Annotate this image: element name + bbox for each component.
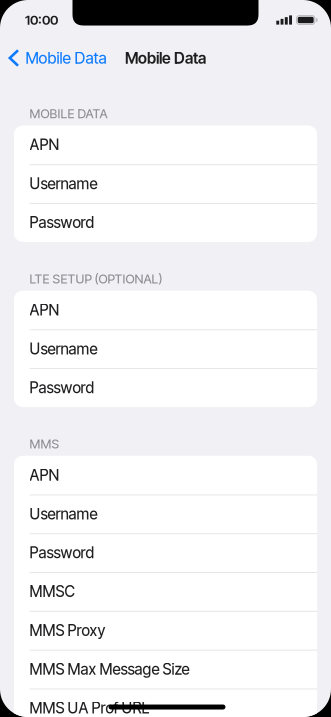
staticText: Password <box>29 213 94 232</box>
staticText: MMS Proxy <box>29 621 105 640</box>
button[interactable]: Username <box>14 164 317 203</box>
staticText: Mobile Data <box>125 49 206 67</box>
button[interactable]: Back to Mobile Data <box>0 43 114 72</box>
staticText: APN <box>29 136 59 154</box>
staticText: APN <box>29 301 59 319</box>
button[interactable]: MMS Max Message Size <box>14 650 317 689</box>
staticText: MMS Max Message Size <box>29 660 189 678</box>
button[interactable]: Username <box>14 329 317 368</box>
button[interactable]: MMS UA Prof URL <box>14 689 317 717</box>
button[interactable]: Password <box>14 533 317 572</box>
staticText: MMS UA Prof URL <box>29 699 149 717</box>
staticText: Mobile Data <box>25 48 106 67</box>
staticText: MOBILE DATA <box>29 106 107 121</box>
staticText: Password <box>29 378 94 397</box>
staticText: Username <box>29 340 97 358</box>
staticText: MMSC <box>29 582 74 601</box>
button[interactable]: Password <box>14 368 317 407</box>
button[interactable]: MMSC <box>14 572 317 611</box>
button[interactable]: Password <box>14 203 317 242</box>
staticText: Password <box>29 544 94 562</box>
button[interactable]: APN <box>14 125 317 164</box>
staticText: Username <box>29 505 97 523</box>
button[interactable]: APN <box>14 291 317 329</box>
button[interactable]: Username <box>14 495 317 533</box>
button[interactable]: APN <box>14 456 317 495</box>
button[interactable]: MMS Proxy <box>14 611 317 650</box>
staticText: Username <box>29 174 97 193</box>
staticText: MMS <box>29 436 59 452</box>
staticText: 10:00 <box>25 12 58 28</box>
staticText: LTE SETUP (OPTIONAL) <box>29 271 162 286</box>
staticText: APN <box>29 466 59 484</box>
